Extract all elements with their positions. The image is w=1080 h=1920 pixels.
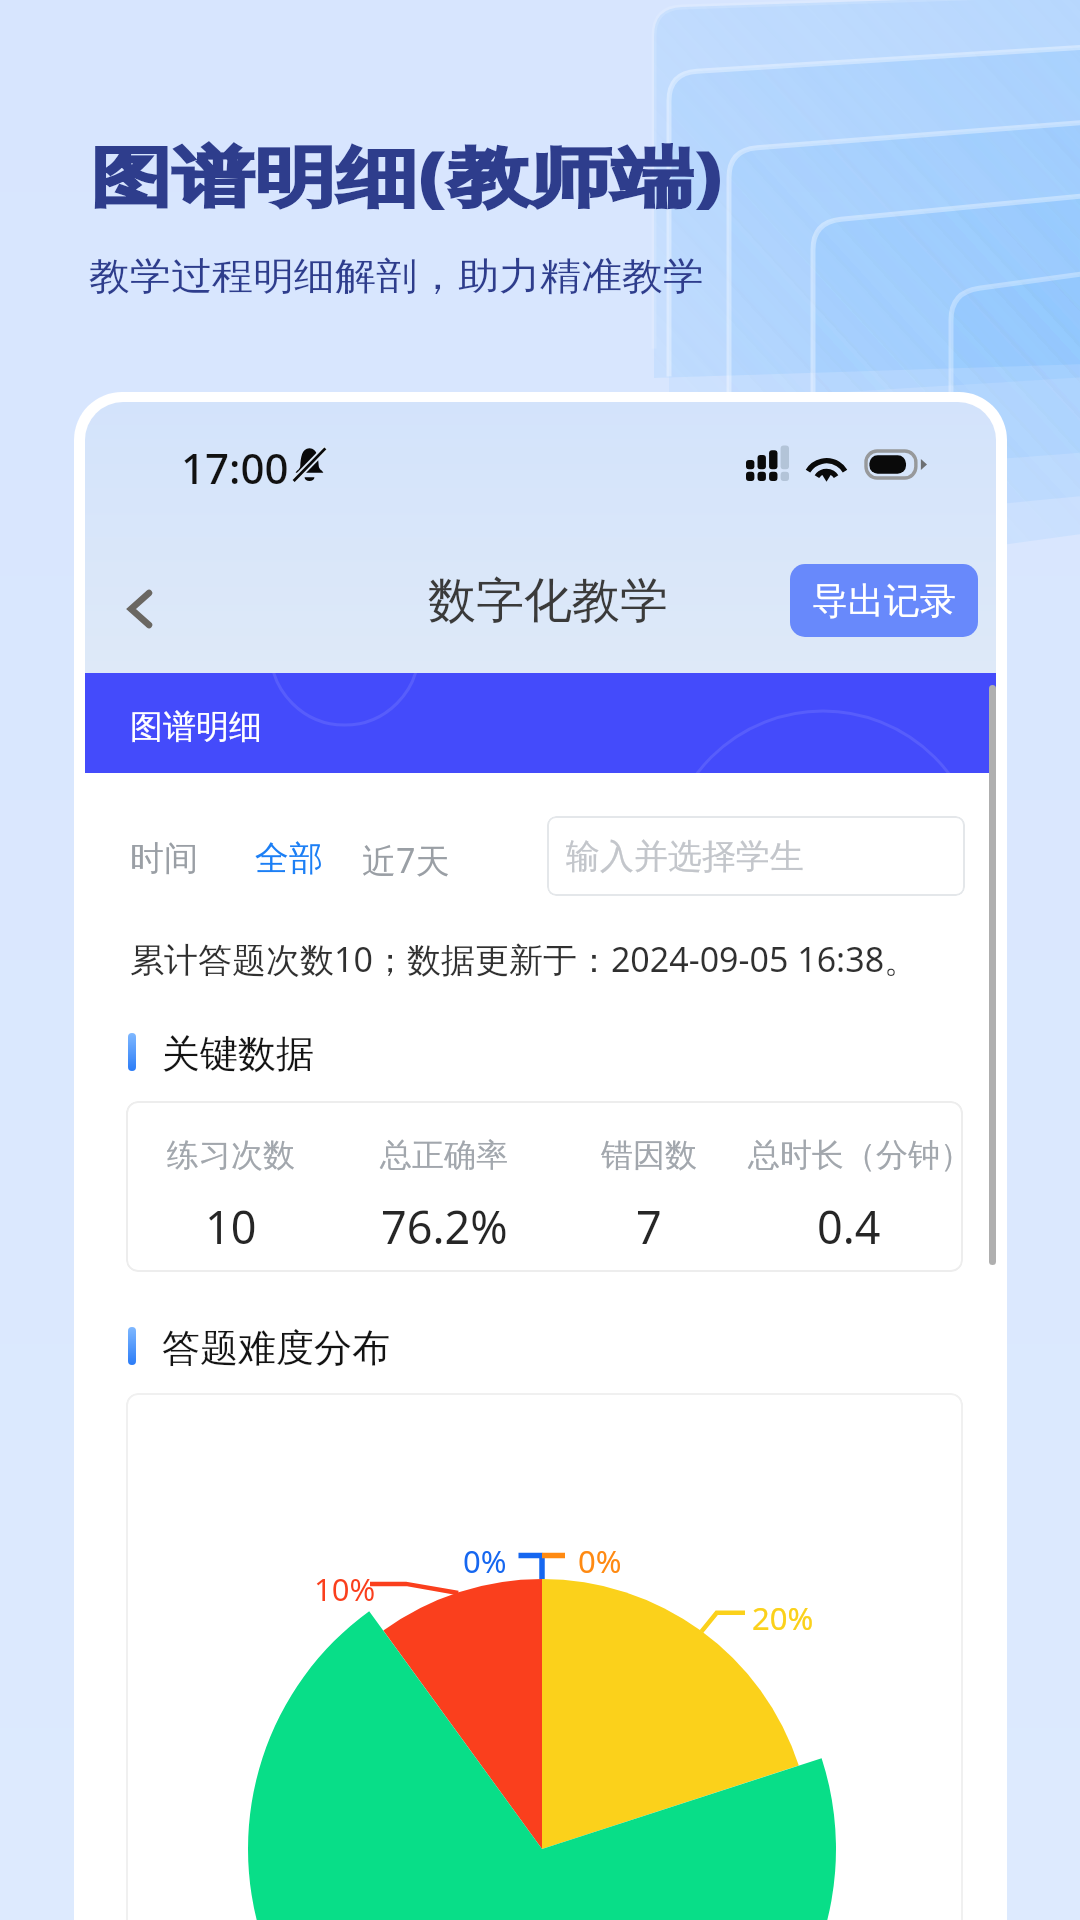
button[interactable]: 导出记录 xyxy=(790,564,978,637)
staticText: 导出记录 xyxy=(812,578,956,623)
staticText: 错因数 xyxy=(601,1135,697,1175)
staticText: 教学过程明细解剖，助力精准教学 xyxy=(89,253,704,301)
staticText: 10 xyxy=(205,1196,257,1257)
button[interactable]: Back xyxy=(105,574,175,644)
staticText: 7 xyxy=(636,1196,662,1257)
staticText: 76.2% xyxy=(381,1196,508,1257)
staticText: 时间 xyxy=(130,837,198,880)
staticText: 全部 xyxy=(255,837,323,880)
staticText: 答题难度分布 xyxy=(162,1324,390,1372)
staticText: 10% xyxy=(314,1568,376,1610)
staticText: 17:00 xyxy=(181,439,289,496)
button[interactable]: 输入并选择学生 xyxy=(547,816,965,896)
staticText: 0% xyxy=(578,1540,622,1582)
staticText: 0.4 xyxy=(817,1196,881,1257)
button[interactable]: 时间 xyxy=(130,837,198,880)
button[interactable]: 全部 xyxy=(255,837,323,880)
staticText: 练习次数 xyxy=(167,1135,295,1175)
staticText: 关键数据 xyxy=(162,1030,314,1078)
button[interactable]: 近7天 xyxy=(362,837,450,883)
staticText: 数字化教学 xyxy=(428,571,668,631)
staticText: 20% xyxy=(752,1597,814,1639)
staticText: 图谱明细(教师端) xyxy=(90,130,723,218)
staticText: 近7天 xyxy=(362,837,450,883)
staticText: 总时长（分钟） xyxy=(748,1135,963,1175)
staticText: 输入并选择学生 xyxy=(566,835,804,878)
staticText: 0% xyxy=(463,1540,507,1582)
staticText: 图谱明细 xyxy=(130,706,262,748)
staticText: 累计答题次数10；数据更新于：2024-09-05 16:38。 xyxy=(130,936,919,982)
staticText: 总正确率 xyxy=(380,1135,508,1175)
